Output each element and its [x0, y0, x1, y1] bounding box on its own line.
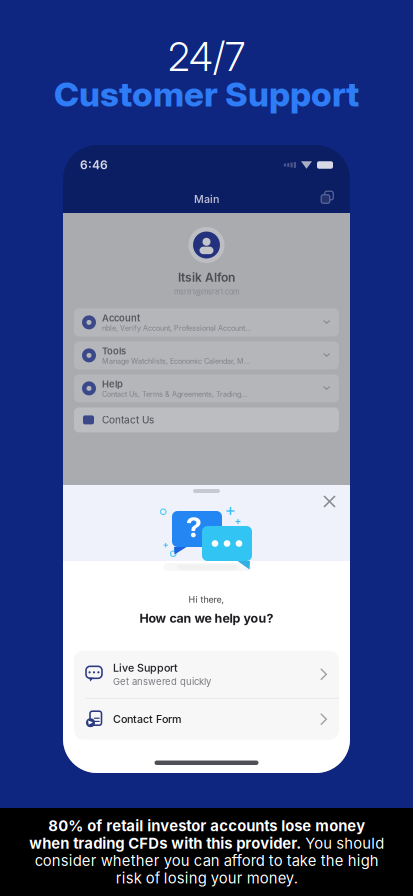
button[interactable]: Contact Form	[74, 699, 339, 740]
staticText: 6:46	[80, 158, 108, 172]
staticText: How can we help you?	[139, 611, 273, 626]
staticText: Manage Watchlists, Economic Calendar, M…	[102, 357, 250, 365]
staticText: Get answered quickly	[113, 676, 211, 687]
button[interactable]: Copy	[313, 186, 338, 211]
staticText: Account	[102, 312, 140, 324]
staticText: Live Support	[113, 661, 178, 674]
staticText: msr81@msr81.com	[174, 287, 239, 296]
staticText: nble, Verify Account, Professional Accou…	[102, 324, 251, 332]
button[interactable]: Close	[316, 488, 343, 515]
staticText: Help	[102, 378, 123, 390]
staticText: Customer Support	[54, 73, 359, 115]
staticText: Itsik Alfon	[178, 270, 235, 284]
staticText: Hi there,	[188, 594, 224, 605]
staticText: Contact Form	[113, 713, 181, 726]
staticText: 24/7	[168, 34, 245, 80]
staticText: ?	[186, 510, 202, 544]
staticText: Contact Us, Terms & Agreements, Trading…	[102, 390, 247, 398]
staticText: Main	[194, 192, 219, 205]
button[interactable]: Live Support	[74, 651, 339, 698]
staticText: 80% of retail investor accounts lose mon…	[29, 817, 384, 887]
staticText: Contact Us	[102, 414, 154, 426]
staticText: Tools	[102, 345, 126, 357]
